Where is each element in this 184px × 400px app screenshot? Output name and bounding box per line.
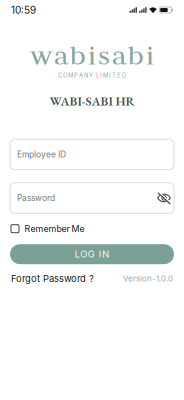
button[interactable]: Forgot Password ?: [11, 273, 94, 284]
button[interactable]: Show password: [151, 186, 171, 209]
staticText: Remember Me: [24, 223, 84, 234]
staticText: Password: [17, 193, 55, 203]
staticText: Employee ID: [17, 149, 66, 160]
button[interactable]: LOG IN: [10, 244, 174, 264]
staticText: 10:59: [11, 4, 36, 16]
staticText: Forgot Password ?: [11, 273, 94, 284]
button[interactable]: Remember Me: [0, 222, 184, 235]
staticText: C O M P A N Y L I M I T E D: [58, 72, 126, 79]
staticText: w a b i s a b i: [30, 38, 154, 72]
staticText: WABI-SABI HR: [49, 93, 134, 109]
staticText: LOG IN: [75, 248, 109, 260]
staticText: Version-1.0.0: [123, 274, 173, 283]
